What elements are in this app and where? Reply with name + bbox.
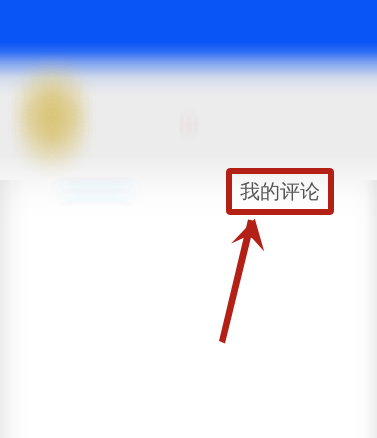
staticText: 我的评论 — [240, 179, 320, 204]
